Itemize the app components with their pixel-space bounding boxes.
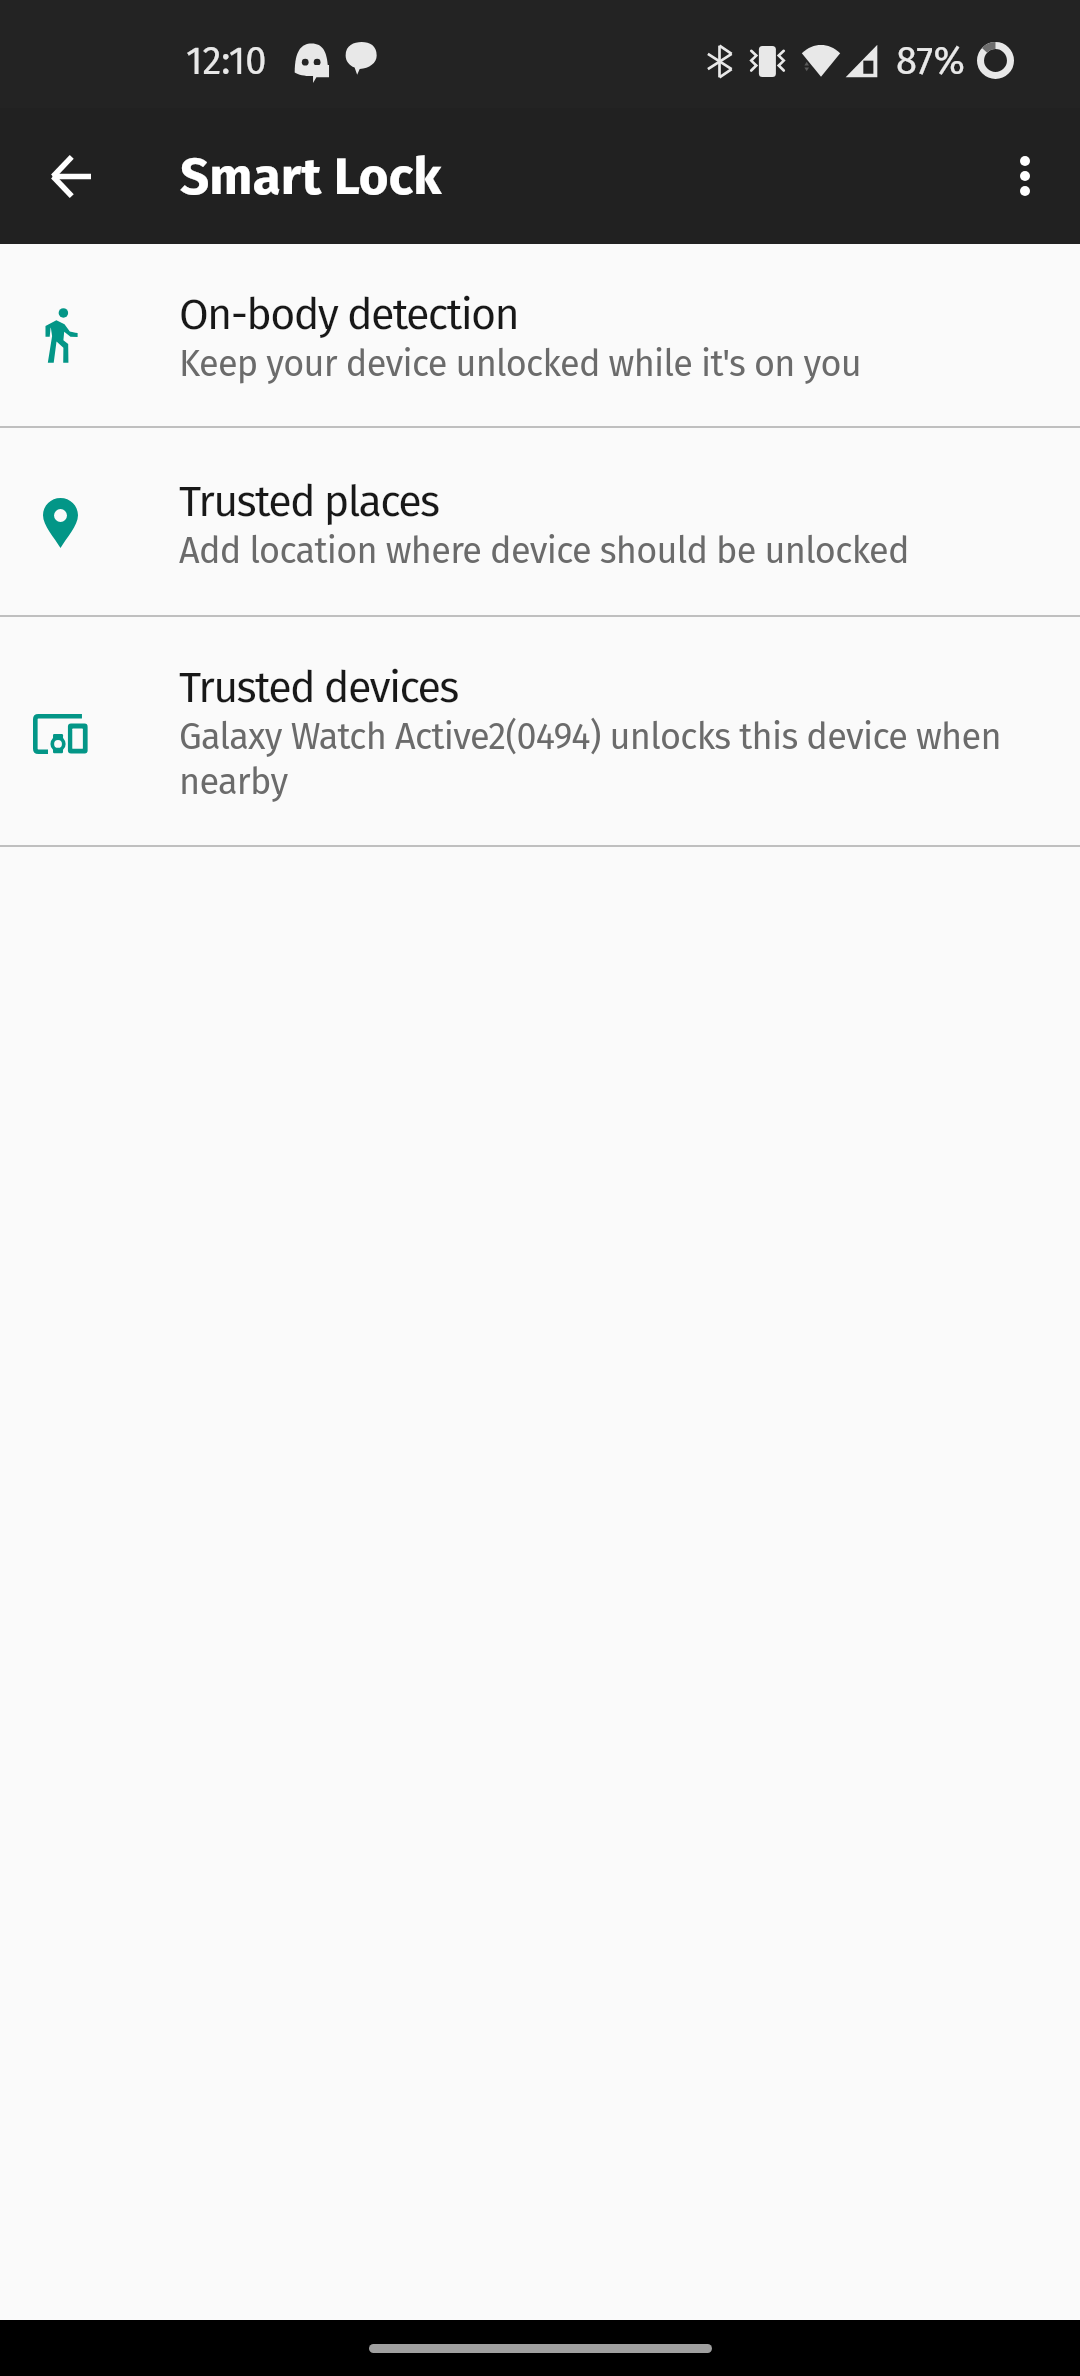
staticText: Trusted devices [179, 662, 458, 714]
button[interactable]: Trusted devices [0, 617, 1080, 845]
button[interactable]: On-body detection [0, 244, 1080, 426]
staticText: On-body detection [179, 289, 519, 341]
staticText: Galaxy Watch Active2(0494) unlocks this … [179, 715, 1045, 804]
button[interactable]: More options [971, 122, 1079, 230]
staticText: 12:10 [186, 38, 267, 84]
staticText: Keep your device unlocked while it's on … [179, 342, 861, 385]
button[interactable]: Trusted places [0, 428, 1080, 615]
staticText: Trusted places [179, 476, 439, 528]
staticText: Smart Lock [180, 146, 442, 207]
button[interactable]: Navigate up [16, 122, 124, 230]
staticText: Add location where device should be unlo… [179, 529, 909, 572]
staticText: 87% [896, 38, 966, 84]
